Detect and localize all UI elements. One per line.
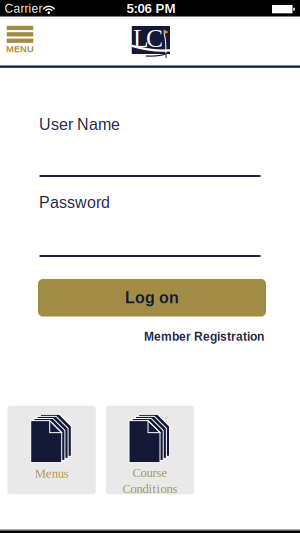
staticText: 5:06 PM: [126, 1, 175, 16]
staticText: Log on: [125, 289, 179, 306]
button[interactable]: Menus: [7, 406, 96, 494]
button[interactable]: Log on: [38, 279, 266, 316]
staticText: Password: [39, 194, 110, 211]
button[interactable]: User Name: [39, 117, 261, 177]
staticText: Conditions: [122, 482, 177, 496]
button[interactable]: Course: [106, 406, 194, 494]
staticText: User Name: [39, 116, 120, 133]
button[interactable]: Password: [39, 195, 261, 257]
staticText: LC: [133, 24, 163, 52]
staticText: Member Registration: [144, 330, 264, 343]
button[interactable]: Menu: [6, 26, 34, 54]
staticText: MENU: [6, 44, 34, 54]
staticText: Menus: [35, 466, 69, 480]
staticText: Carrier: [4, 2, 42, 15]
staticText: Course: [132, 466, 167, 480]
button[interactable]: Member Registration: [144, 330, 264, 343]
